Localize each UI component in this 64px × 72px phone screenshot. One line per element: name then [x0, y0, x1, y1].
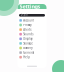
staticText: Account [23, 19, 34, 22]
button[interactable]: General [17, 50, 46, 55]
staticText: General [23, 51, 34, 54]
staticText: Help [23, 55, 30, 59]
button[interactable]: Alerts [17, 27, 46, 32]
staticText: Battery [23, 46, 32, 50]
staticText: Storage [23, 42, 33, 45]
button[interactable]: Search [19, 14, 45, 17]
button[interactable]: Sounds [17, 32, 46, 36]
button[interactable]: Privacy [17, 23, 46, 27]
staticText: Privacy [23, 23, 31, 27]
button[interactable]: Storage [17, 41, 46, 46]
button[interactable]: Battery [17, 46, 46, 50]
staticText: Sounds [23, 32, 33, 36]
staticText: Settings [19, 3, 40, 10]
button[interactable]: Display [17, 36, 46, 41]
staticText: Display [23, 37, 32, 40]
button[interactable]: Account [17, 18, 46, 23]
button[interactable]: Help [17, 55, 46, 59]
staticText: Alerts [23, 28, 31, 31]
staticText: Search [20, 13, 28, 17]
